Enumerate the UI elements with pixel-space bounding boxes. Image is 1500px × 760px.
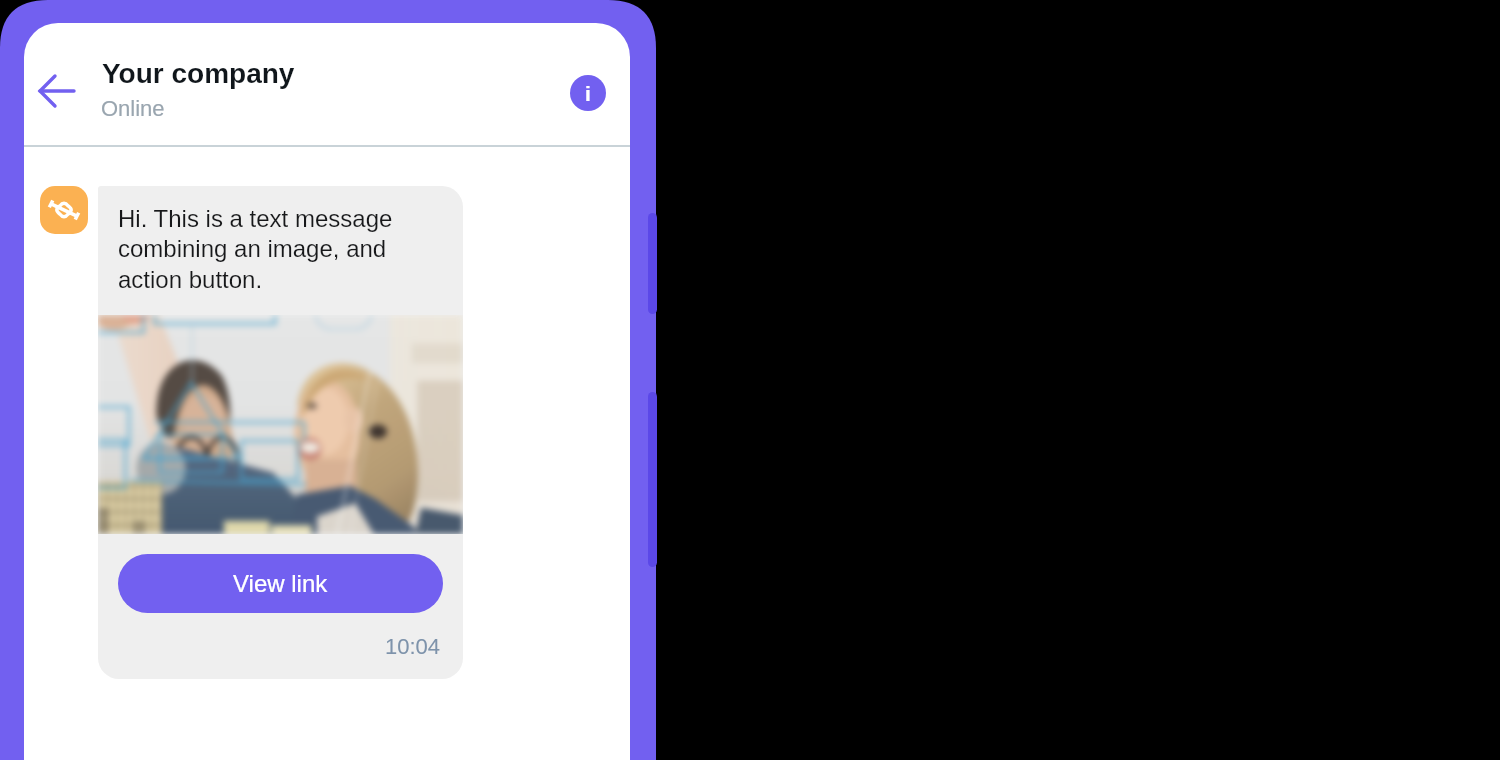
- button[interactable]: View link: [118, 554, 443, 613]
- staticText: 10:04: [385, 634, 441, 659]
- button[interactable]: Back: [30, 67, 92, 123]
- staticText: Hi. This is a text message combining an …: [118, 205, 441, 294]
- button[interactable]: Info: [570, 75, 606, 111]
- staticText: View link: [233, 570, 328, 597]
- staticText: Online: [101, 96, 165, 121]
- staticText: Your company: [102, 58, 295, 89]
- staticText: i: [585, 82, 591, 105]
